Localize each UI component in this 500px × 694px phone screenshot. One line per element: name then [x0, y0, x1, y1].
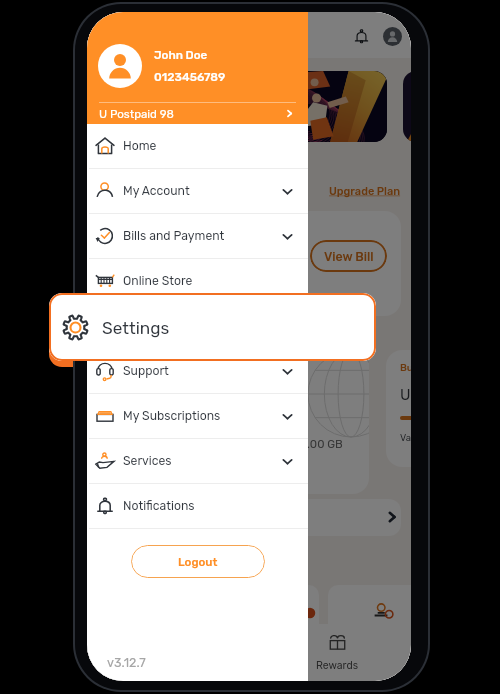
button[interactable]: Rewards — [301, 624, 373, 681]
button[interactable]: 0.00 GB — [97, 321, 369, 494]
staticText: Support — [123, 364, 169, 378]
button[interactable] — [103, 71, 387, 142]
staticText: My Subscriptions — [123, 409, 221, 423]
button[interactable]: Services — [87, 439, 308, 483]
button[interactable] — [97, 585, 319, 637]
button[interactable]: My Subscriptions — [87, 394, 308, 438]
button[interactable] — [97, 499, 401, 536]
staticText: Unlimited — [400, 386, 411, 404]
staticText: Settings — [102, 318, 170, 338]
staticText: Bills and Payment — [123, 229, 225, 243]
button[interactable]: View Bill — [310, 240, 387, 272]
staticText: View Bill — [324, 249, 374, 264]
staticText: My Account — [123, 184, 190, 198]
staticText: Logout — [178, 555, 218, 569]
button[interactable]: Profile — [377, 21, 407, 51]
button[interactable]: Notifications — [346, 21, 376, 51]
button[interactable]: Home — [87, 124, 308, 168]
staticText: Home — [108, 659, 137, 671]
staticText: v3.12.7 — [107, 655, 146, 670]
button[interactable]: Home — [87, 624, 158, 681]
staticText: John Doe — [154, 48, 208, 62]
staticText: Settings — [123, 319, 171, 333]
staticText: Bundle — [400, 362, 411, 374]
button[interactable]: U Postpaid 98 — [87, 103, 308, 124]
staticText: U Postpaid 98 — [99, 107, 174, 121]
button[interactable]: Upgrade Plan — [329, 185, 401, 198]
button[interactable]: Online Store — [87, 259, 308, 303]
staticText: Rewards — [316, 659, 359, 671]
button[interactable]: Notifications — [87, 484, 308, 528]
staticText: Online Store — [123, 274, 193, 288]
button[interactable]: Bills and Payment — [87, 214, 308, 258]
button[interactable] — [328, 585, 411, 637]
button[interactable]: My Account — [87, 169, 308, 213]
button[interactable]: Logout — [131, 545, 265, 578]
button[interactable]: Settings — [87, 304, 308, 348]
staticText: Valid till 12 Jun — [400, 432, 411, 443]
staticText: Notifications — [123, 499, 195, 513]
staticText: 0.00 GB — [300, 437, 343, 451]
staticText: 0123456789 — [154, 70, 226, 84]
button[interactable]: Support — [87, 349, 308, 393]
button[interactable]: Settings — [49, 293, 376, 361]
staticText: Services — [123, 454, 172, 468]
staticText: Home — [123, 139, 157, 153]
